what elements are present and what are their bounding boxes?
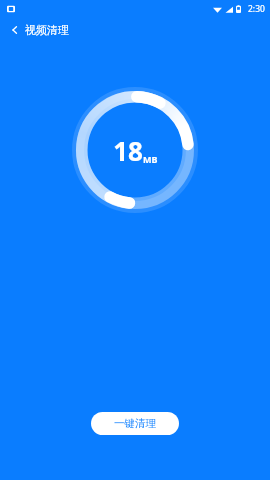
staticText: 2:30 (248, 3, 265, 15)
button[interactable]: 一键清理 (91, 412, 179, 435)
staticText: 视频清理 (25, 23, 69, 37)
staticText: 一键清理 (114, 417, 156, 430)
other: Back (9, 24, 21, 36)
staticText: 18 (113, 133, 143, 168)
staticText: MB (143, 153, 158, 165)
button[interactable]: Back (0, 20, 79, 40)
